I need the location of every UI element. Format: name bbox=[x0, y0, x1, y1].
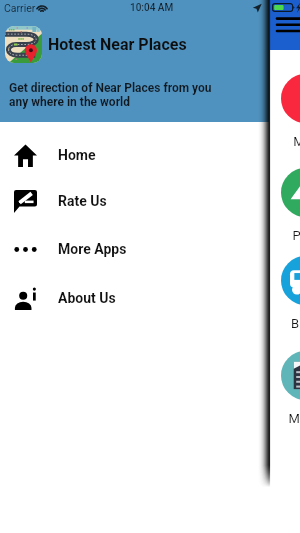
staticText: Mall bbox=[293, 134, 300, 149]
staticText: 10:04 AM bbox=[130, 2, 174, 14]
staticText: Park bbox=[292, 228, 300, 243]
staticText: Metro bbox=[288, 411, 300, 426]
button[interactable]: Home bbox=[0, 132, 269, 178]
staticText: Rate Us bbox=[58, 193, 107, 209]
button[interactable]: Mall bbox=[281, 74, 300, 149]
button[interactable]: Metro bbox=[281, 351, 300, 426]
button[interactable]: Open navigation menu bbox=[275, 14, 300, 33]
button[interactable]: Rate Us bbox=[0, 178, 269, 224]
staticText: Carrier bbox=[4, 2, 36, 14]
button[interactable]: Bank bbox=[281, 256, 300, 331]
button[interactable]: About Us bbox=[0, 275, 269, 321]
staticText: About Us bbox=[58, 290, 116, 306]
staticText: Home bbox=[58, 147, 96, 163]
staticText: Hotest Near Places bbox=[48, 35, 187, 54]
staticText: More Apps bbox=[58, 241, 127, 257]
staticText: Get direction of Near Places from you an… bbox=[9, 81, 212, 109]
button[interactable]: Park bbox=[281, 168, 300, 243]
staticText: Bank bbox=[291, 316, 300, 331]
button[interactable]: More Apps bbox=[0, 226, 269, 272]
